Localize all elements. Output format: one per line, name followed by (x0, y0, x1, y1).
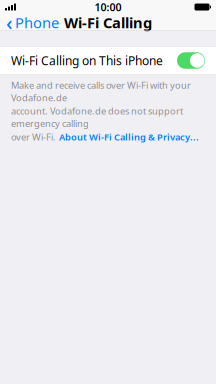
staticText: Phone (15, 13, 59, 32)
staticText: account. Vodafone.de does not support em… (11, 105, 183, 130)
button[interactable]: ‹ (0, 14, 65, 31)
button[interactable]: Wi-Fi Calling on This iPhone (0, 46, 216, 75)
staticText: ‹ (6, 9, 13, 36)
staticText: Wi-Fi Calling on This iPhone (11, 52, 163, 68)
staticText: 10:00 (94, 0, 121, 14)
staticText: About Wi-Fi Calling & Privacy... (59, 131, 199, 143)
staticText: over Wi-Fi. (11, 131, 56, 143)
button[interactable]: About Wi-Fi Calling & Privacy... (59, 131, 199, 143)
staticText: Make and receive calls over Wi-Fi with y… (11, 79, 191, 104)
staticText: Wi-Fi Calling (64, 13, 152, 32)
